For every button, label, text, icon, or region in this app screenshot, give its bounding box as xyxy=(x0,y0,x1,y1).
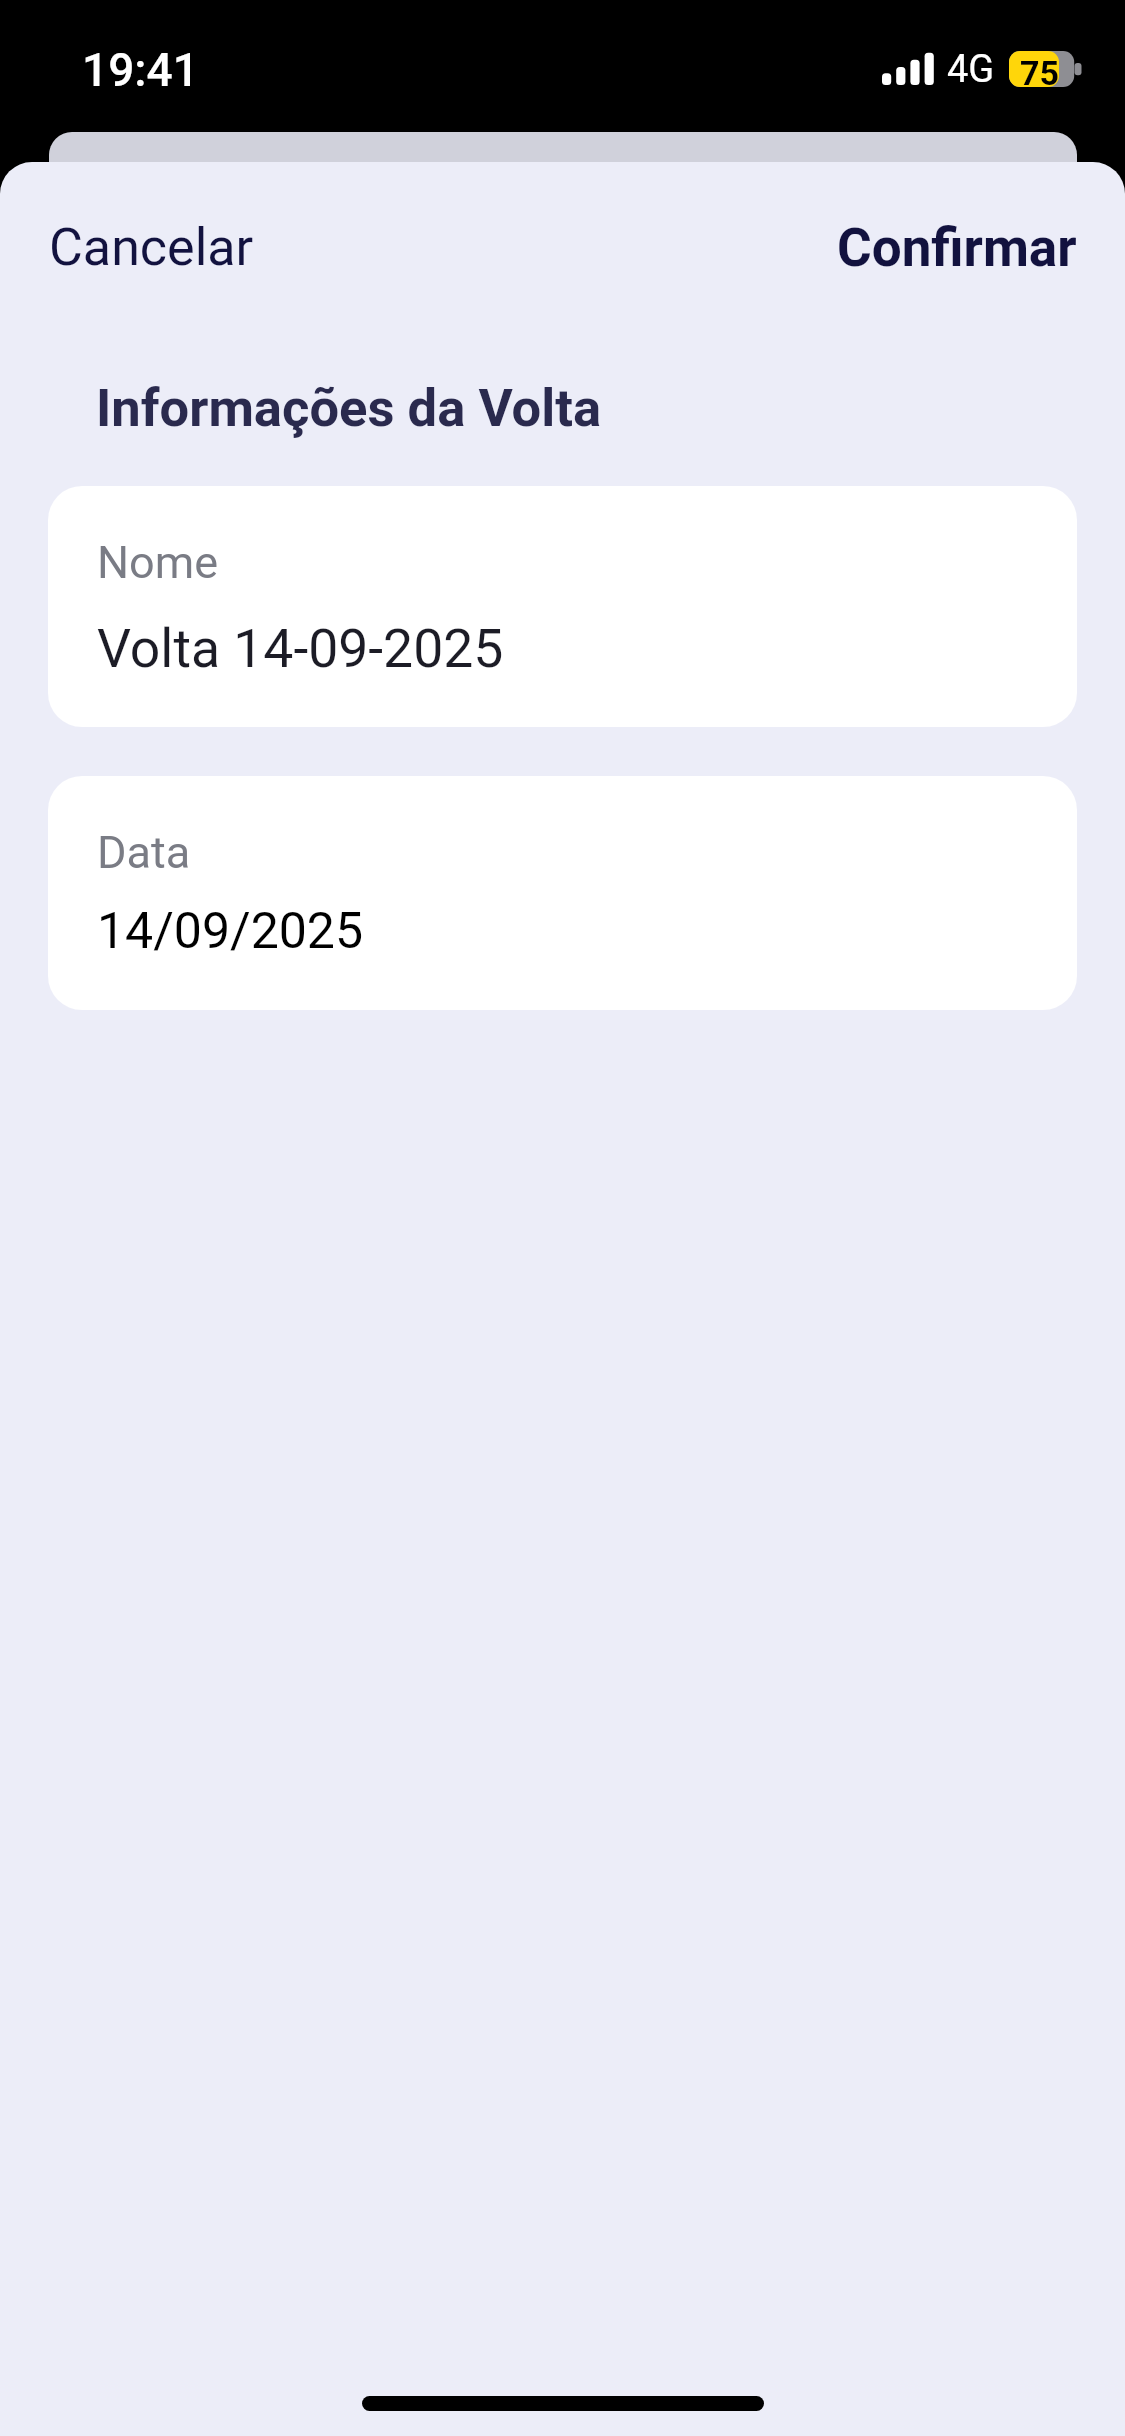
other: Cellular signal xyxy=(882,52,934,85)
other: Battery 75 percent xyxy=(1009,51,1083,87)
staticText: Confirmar xyxy=(837,217,1077,279)
staticText: 75 xyxy=(1020,53,1060,93)
button[interactable]: Data xyxy=(48,776,1077,1010)
button[interactable]: Confirmar xyxy=(805,200,1108,286)
staticText: 14/09/2025 xyxy=(97,902,364,961)
staticText: Data xyxy=(97,826,191,879)
button[interactable]: Cancelar xyxy=(17,201,287,287)
staticText: 19:41 xyxy=(82,43,199,97)
button[interactable]: Nome xyxy=(48,486,1077,727)
staticText: 4G xyxy=(947,47,995,92)
staticText: Volta 14-09-2025 xyxy=(97,617,504,680)
staticText: Informações da Volta xyxy=(96,377,602,439)
staticText: Cancelar xyxy=(49,217,254,278)
staticText: Nome xyxy=(97,536,219,589)
